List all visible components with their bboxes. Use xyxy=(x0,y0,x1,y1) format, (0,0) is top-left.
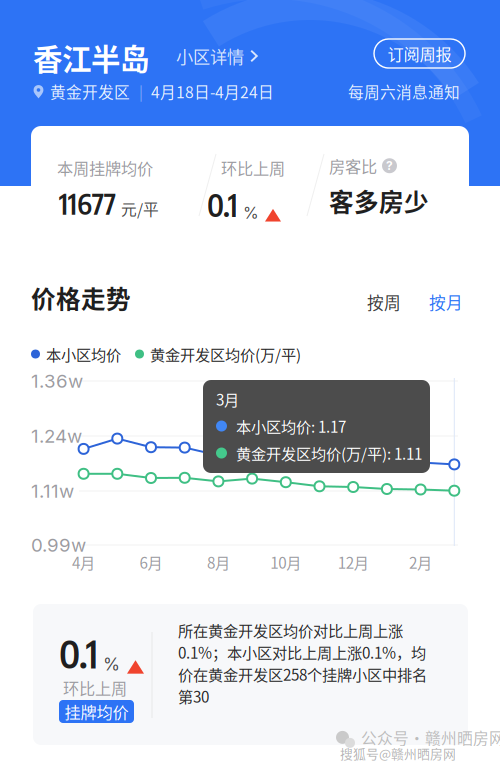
staticText: 环比上周 xyxy=(221,156,285,179)
staticText: 所在黄金开发区均价对比上周上涨0.1%；本小区对比上周上涨0.1%，均价在黄金开… xyxy=(178,619,427,707)
staticText: 黄金开发区 xyxy=(50,80,130,103)
staticText: 小区详情 xyxy=(176,44,244,68)
staticText: 4月18日-4月24日 xyxy=(151,80,274,103)
staticText: | xyxy=(139,81,143,102)
staticText: % xyxy=(243,203,259,222)
staticText: 挂牌均价 xyxy=(64,700,128,723)
staticText: 10月 xyxy=(270,551,301,573)
staticText: 2月 xyxy=(409,551,432,573)
staticText: 房客比 xyxy=(329,154,377,177)
staticText: 公众号·赣州晒房网 xyxy=(361,726,500,749)
staticText: 0.1 xyxy=(207,186,238,223)
button[interactable]: 订阅周报 xyxy=(374,39,465,68)
staticText: 11677 xyxy=(59,186,116,221)
staticText: 4月 xyxy=(72,551,95,573)
staticText: 客多房少 xyxy=(329,183,429,219)
staticText: 12月 xyxy=(338,551,369,573)
staticText: 0.99w xyxy=(31,534,86,556)
button[interactable]: 按周 xyxy=(366,290,402,314)
staticText: 环比上周 xyxy=(63,676,127,699)
staticText: 元/平 xyxy=(121,197,159,220)
button[interactable]: 小区详情 xyxy=(176,44,258,68)
staticText: 黄金开发区均价(万/平) xyxy=(150,343,301,365)
staticText: ? xyxy=(386,158,393,173)
staticText: 按周 xyxy=(367,290,401,314)
staticText: 本小区均价 xyxy=(46,343,121,365)
staticText: 搜狐号@赣州晒房网 xyxy=(340,744,456,761)
staticText: 按月 xyxy=(429,290,463,314)
staticText: 3月 xyxy=(216,388,239,410)
staticText: 1.24w xyxy=(31,425,82,447)
button[interactable]: 按月 xyxy=(428,290,464,314)
staticText: 0.1 xyxy=(59,630,98,677)
staticText: 价格走势 xyxy=(31,280,131,316)
staticText: 8月 xyxy=(207,551,230,573)
staticText: 本小区均价: 1.17 xyxy=(236,415,346,437)
staticText: 1.11w xyxy=(31,480,74,502)
button[interactable]: 挂牌均价 xyxy=(59,700,134,723)
staticText: 黄金开发区均价(万/平): 1.11 xyxy=(236,442,422,464)
staticText: 香江半岛 xyxy=(33,36,149,79)
staticText: 本周挂牌均价 xyxy=(57,156,153,179)
staticText: 1.36w xyxy=(31,370,83,392)
staticText: 订阅周报 xyxy=(387,42,451,65)
staticText: 每周六消息通知 xyxy=(348,80,460,103)
staticText: 6月 xyxy=(139,551,162,573)
staticText: % xyxy=(103,654,120,675)
